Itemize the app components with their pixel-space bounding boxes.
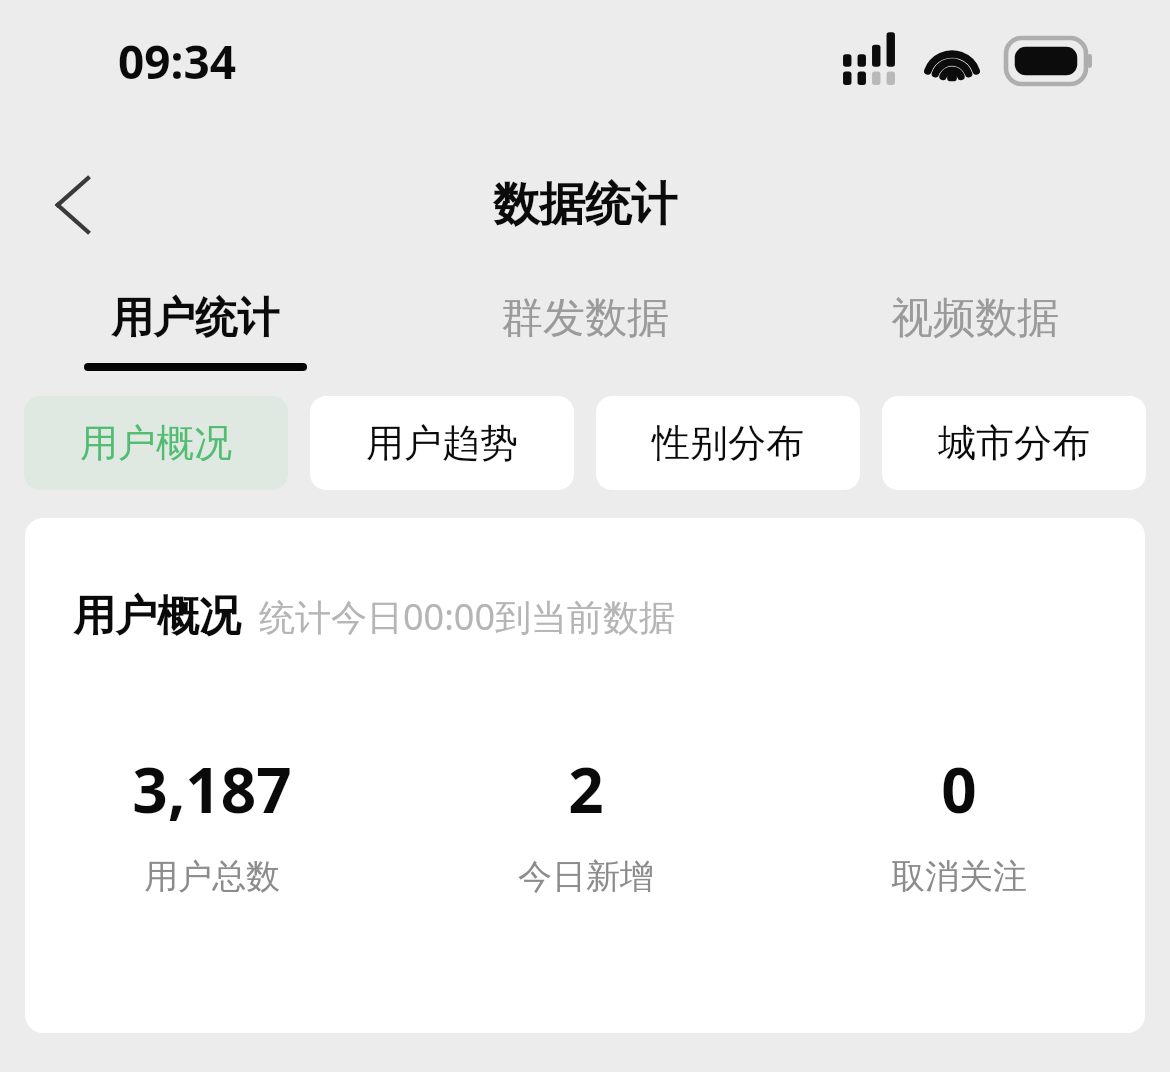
staticText: 取消关注 [891, 855, 1027, 898]
button[interactable]: 性别分布 [596, 396, 860, 490]
button[interactable]: 用户趋势 [310, 396, 574, 490]
staticText: 用户总数 [144, 855, 280, 898]
staticText: 用户统计 [111, 292, 279, 345]
staticText: 性别分布 [652, 419, 804, 467]
staticText: 3,187 [132, 747, 292, 831]
staticText: 城市分布 [938, 419, 1090, 467]
staticText: 数据统计 [493, 176, 677, 234]
staticText: 用户趋势 [366, 419, 518, 467]
button[interactable]: 用户统计 [0, 280, 390, 396]
staticText: 统计今日00:00到当前数据 [259, 592, 676, 641]
button[interactable]: 城市分布 [882, 396, 1146, 490]
staticText: 2 [568, 747, 604, 831]
staticText: 今日新增 [518, 855, 654, 898]
button[interactable]: 用户概况 [24, 396, 288, 490]
staticText: 09:34 [118, 30, 237, 93]
button[interactable]: Back [24, 157, 120, 253]
staticText: 用户概况 [73, 590, 241, 643]
button[interactable]: 群发数据 [390, 280, 780, 396]
button[interactable]: 0 [772, 747, 1145, 898]
staticText: 群发数据 [501, 292, 669, 345]
staticText: 视频数据 [891, 292, 1059, 345]
button[interactable]: 视频数据 [780, 280, 1170, 396]
staticText: 用户概况 [80, 419, 232, 467]
staticText: 0 [941, 747, 977, 831]
button[interactable]: 3,187 [25, 747, 399, 898]
button[interactable]: 2 [399, 747, 772, 898]
